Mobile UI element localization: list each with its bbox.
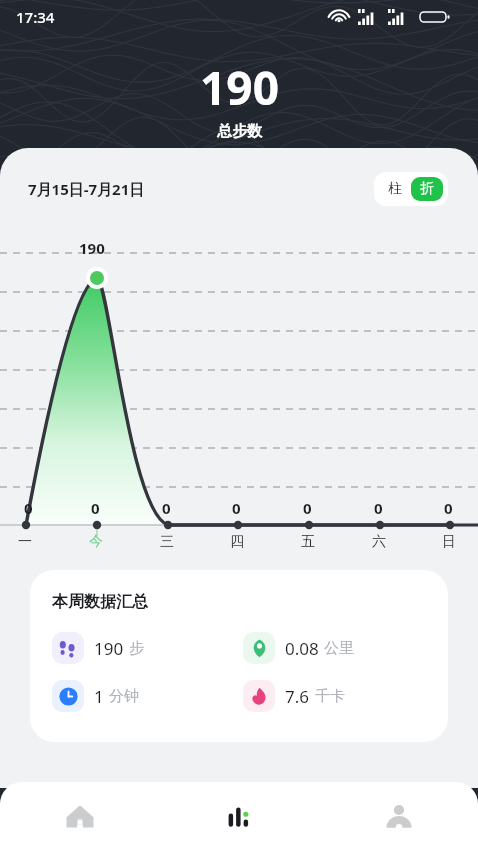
staticText: 分钟: [109, 687, 139, 706]
button[interactable]: 7.6: [243, 680, 434, 712]
staticText: 日: [442, 533, 456, 551]
staticText: 步: [129, 639, 144, 658]
button[interactable]: 柱: [379, 177, 411, 201]
staticText: 折: [420, 180, 434, 198]
staticText: 0: [303, 498, 312, 518]
staticText: 0: [91, 498, 100, 518]
staticText: 7.6: [285, 685, 310, 708]
staticText: 190: [79, 238, 105, 258]
staticText: 0.08: [285, 637, 319, 660]
staticText: 0: [232, 498, 241, 518]
button[interactable]: Statistics: [160, 782, 319, 850]
button[interactable]: Profile: [319, 782, 478, 850]
staticText: 17:34: [16, 7, 55, 27]
button[interactable]: Home: [0, 782, 160, 850]
button[interactable]: 0.08: [243, 632, 434, 664]
staticText: 公里: [324, 639, 354, 658]
staticText: 三: [160, 533, 174, 551]
staticText: 六: [372, 533, 386, 551]
staticText: 五: [301, 533, 315, 551]
staticText: 190: [200, 56, 279, 119]
staticText: 总步数: [217, 122, 262, 141]
staticText: 0: [24, 498, 33, 518]
staticText: 7月15日-7月21日: [28, 179, 145, 199]
button[interactable]: 190: [52, 632, 243, 664]
staticText: 190: [94, 637, 124, 660]
staticText: 0: [162, 498, 171, 518]
staticText: 柱: [388, 180, 402, 198]
staticText: 0: [374, 498, 383, 518]
staticText: 一: [18, 533, 32, 551]
staticText: 0: [444, 498, 453, 518]
staticText: 四: [230, 533, 244, 551]
button[interactable]: 1: [52, 680, 243, 712]
staticText: 1: [94, 685, 104, 708]
staticText: 千卡: [315, 687, 345, 706]
button[interactable]: 折: [411, 177, 443, 201]
staticText: 本周数据汇总: [52, 592, 148, 612]
staticText: 今: [89, 533, 103, 551]
